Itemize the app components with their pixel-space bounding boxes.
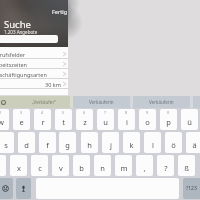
button[interactable]: 8 — [118, 109, 135, 130]
staticText: 3 — [20, 110, 23, 115]
staticText: 4 — [41, 110, 44, 115]
button[interactable]: y — [0, 155, 6, 176]
staticText: b — [79, 163, 84, 173]
button[interactable]: ?123 — [183, 178, 200, 199]
button[interactable]: j — [102, 132, 119, 153]
staticText: ö — [171, 140, 176, 150]
button[interactable]: h — [81, 132, 98, 153]
button[interactable]: g — [59, 132, 76, 153]
staticText: m — [120, 163, 128, 173]
button[interactable]: f — [39, 132, 56, 153]
staticText: l — [152, 140, 154, 150]
staticText: 30 km — [45, 81, 61, 88]
button[interactable]: n — [94, 155, 111, 176]
staticText: r — [41, 117, 45, 127]
staticText: k — [129, 140, 134, 150]
button[interactable]: ? — [157, 155, 174, 176]
staticText: 8 — [125, 110, 128, 115]
button[interactable]: 7 — [97, 109, 114, 130]
staticText: ? — [164, 163, 168, 173]
staticText: Verkäuferin — [149, 99, 174, 105]
button[interactable]: Berufsfelder — [0, 49, 68, 59]
staticText: t — [62, 117, 65, 127]
staticText: Fertig — [52, 8, 68, 15]
staticText: d — [24, 140, 29, 150]
button[interactable]: b — [73, 155, 90, 176]
staticText: 7 — [104, 110, 107, 115]
button[interactable]: 5 — [55, 109, 72, 130]
button[interactable]: Verkäuferin — [133, 96, 190, 108]
staticText: u — [103, 117, 108, 127]
button[interactable]: 30 km — [0, 79, 68, 89]
button[interactable]: „Verkäufer“ — [0, 96, 70, 108]
staticText: z — [83, 117, 87, 127]
button[interactable]: m — [115, 155, 132, 176]
button[interactable] — [0, 35, 58, 43]
staticText: 1.203 Angebote — [4, 29, 38, 35]
staticText: ä — [192, 140, 197, 150]
staticText: Suche — [4, 18, 31, 31]
staticText: 6 — [83, 110, 86, 115]
staticText: 2 — [0, 110, 2, 115]
staticText: Berufsfelder — [0, 51, 26, 58]
button[interactable]: Voice input — [16, 178, 31, 199]
staticText: g — [65, 140, 70, 150]
button[interactable]: ä — [186, 132, 200, 153]
staticText: n — [100, 163, 105, 173]
button[interactable]: Beschäftigungsarten — [0, 69, 68, 79]
staticText: Beschäftigungsarten — [0, 71, 47, 78]
button[interactable]: , — [136, 155, 153, 176]
staticText: x — [17, 163, 21, 173]
button[interactable]: v — [52, 155, 69, 176]
button[interactable]: c — [31, 155, 48, 176]
button[interactable]: ß — [178, 155, 195, 176]
button[interactable]: Arbeitszeiten — [0, 59, 68, 69]
button[interactable]: 6 — [76, 109, 93, 130]
staticText: ?123 — [186, 185, 197, 192]
button[interactable]: 0 — [160, 109, 177, 130]
staticText: o — [145, 117, 150, 127]
staticText: 9 — [146, 110, 149, 115]
staticText: v — [59, 163, 63, 173]
staticText: i — [126, 117, 128, 127]
button[interactable]: Verkäuferin — [73, 96, 130, 108]
button[interactable]: 9 — [139, 109, 156, 130]
staticText: c — [38, 163, 42, 173]
button[interactable]: 3 — [13, 109, 30, 130]
staticText: ß — [184, 163, 189, 173]
button[interactable]: k — [123, 132, 140, 153]
staticText: h — [87, 140, 92, 150]
button[interactable]: ö — [165, 132, 182, 153]
button[interactable]: 4 — [34, 109, 51, 130]
staticText: „Verkäufer“ — [32, 99, 56, 105]
staticText: j — [110, 140, 112, 150]
button[interactable]: ü — [181, 109, 198, 130]
button[interactable]: l — [144, 132, 161, 153]
staticText: Arbeitszeiten — [0, 61, 27, 68]
staticText: , — [143, 163, 146, 173]
staticText: e — [19, 117, 24, 127]
button[interactable]: Fertig — [52, 8, 68, 15]
button[interactable]: d — [18, 132, 35, 153]
button[interactable]: s — [0, 132, 14, 153]
staticText: Verkäuferin — [89, 99, 114, 105]
staticText: 5 — [62, 110, 65, 115]
staticText: f — [46, 140, 49, 150]
button[interactable]: Emoji — [0, 178, 13, 199]
staticText: s — [4, 140, 8, 150]
button[interactable]: 2 — [0, 109, 9, 130]
staticText: 0 — [167, 110, 170, 115]
staticText: ü — [187, 117, 192, 127]
button[interactable]: x — [10, 155, 27, 176]
staticText: p — [166, 117, 171, 127]
staticText: w — [0, 117, 4, 127]
